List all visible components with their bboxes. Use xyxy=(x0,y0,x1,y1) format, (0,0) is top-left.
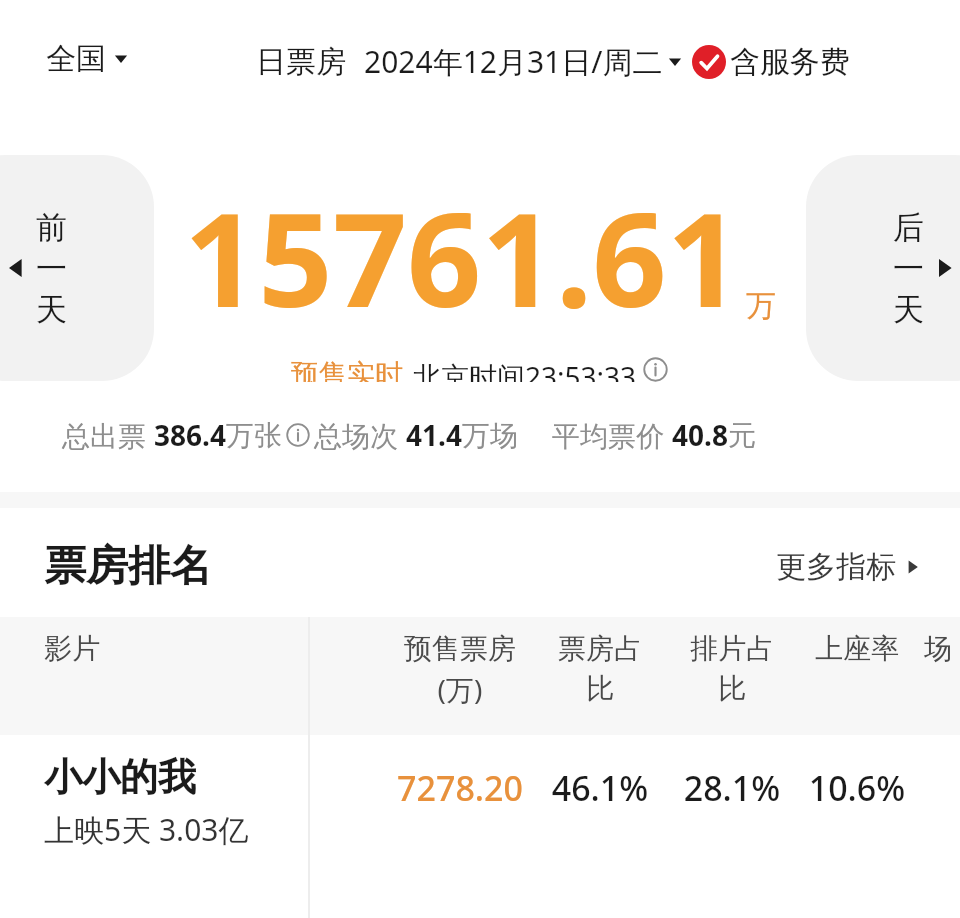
staticText: 28.1% xyxy=(666,765,798,811)
staticText: 小小的我 xyxy=(44,753,196,801)
button[interactable]: 后一天 xyxy=(806,155,960,381)
staticText: 40.8 xyxy=(672,416,728,454)
staticText: 7278.20 xyxy=(386,765,534,811)
button[interactable]: 全国 xyxy=(46,40,130,78)
staticText: 386.4 xyxy=(154,416,226,454)
staticText: 总出票 xyxy=(62,416,154,454)
button[interactable]: 更多指标 xyxy=(776,548,924,586)
staticText: 预售票房 (万) xyxy=(386,631,534,708)
staticText: 票房排名 xyxy=(44,540,212,593)
staticText: 更多指标 xyxy=(776,548,896,586)
staticText: 总场次 xyxy=(314,416,406,454)
staticText: 影片 xyxy=(44,631,100,666)
staticText: 万场 xyxy=(462,418,518,453)
staticText: 平均票价 xyxy=(552,416,672,454)
staticText: 北京时间23:53:33 xyxy=(413,357,637,382)
button[interactable]: 小小的我 xyxy=(0,735,960,895)
staticText: 41.4 xyxy=(406,416,462,454)
staticText: 日票房 xyxy=(256,43,346,81)
button[interactable]: 2024年12月31日/周二 xyxy=(364,41,684,82)
staticText: 万张 xyxy=(226,418,282,453)
button[interactable]: 前一天 xyxy=(0,155,154,381)
staticText: 预售实时 xyxy=(291,357,403,382)
staticText: 上映5天 3.03亿 xyxy=(44,809,249,850)
staticText: 2024年12月31日/周二 xyxy=(364,41,663,82)
staticText: 15761.61 xyxy=(184,168,742,345)
staticText: 元 xyxy=(728,418,756,453)
staticText: 票房占 比 xyxy=(534,631,666,707)
button[interactable]: 含服务费 xyxy=(692,43,850,81)
staticText: 46.1% xyxy=(534,765,666,811)
staticText: 全国 xyxy=(46,40,106,78)
staticText: 前 一 天 xyxy=(36,208,67,329)
staticText: 10.6% xyxy=(798,765,916,811)
staticText: 场 xyxy=(916,631,960,666)
staticText: 含服务费 xyxy=(730,43,850,81)
staticText: 排片占 比 xyxy=(666,631,798,707)
staticText: 后 一 天 xyxy=(893,208,924,329)
staticText: 万 xyxy=(746,287,776,325)
staticText: 上座率 xyxy=(798,631,916,666)
